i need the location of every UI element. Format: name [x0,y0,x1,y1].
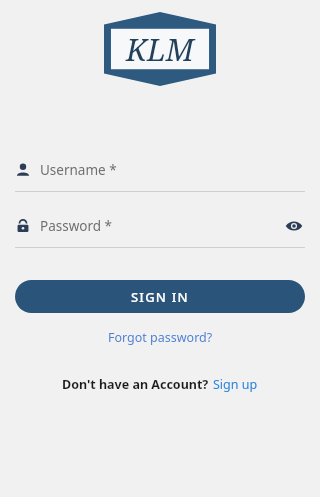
staticText: Sign up [213,376,258,393]
button[interactable]: Forgot password? [102,327,219,348]
button[interactable]: Username * [15,158,305,192]
staticText: Don't have an Account? [62,376,209,393]
staticText: Forgot password? [108,329,213,346]
button[interactable]: Password * [15,214,305,248]
staticText: SIGN IN [131,288,189,306]
staticText: KLM [126,29,194,70]
button[interactable]: SIGN IN [15,280,305,313]
staticText: Username * [40,161,117,179]
button[interactable]: Show password [283,215,305,237]
button[interactable]: Sign up [213,376,258,393]
staticText: Password * [40,217,113,235]
